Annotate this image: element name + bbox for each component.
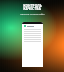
staticText: контроль качества работ [20,13,45,16]
button[interactable] [22,22,43,67]
staticText: КОНТРОЛЬ [23,3,42,7]
staticText: КАЧЕСТВА [23,6,41,10]
